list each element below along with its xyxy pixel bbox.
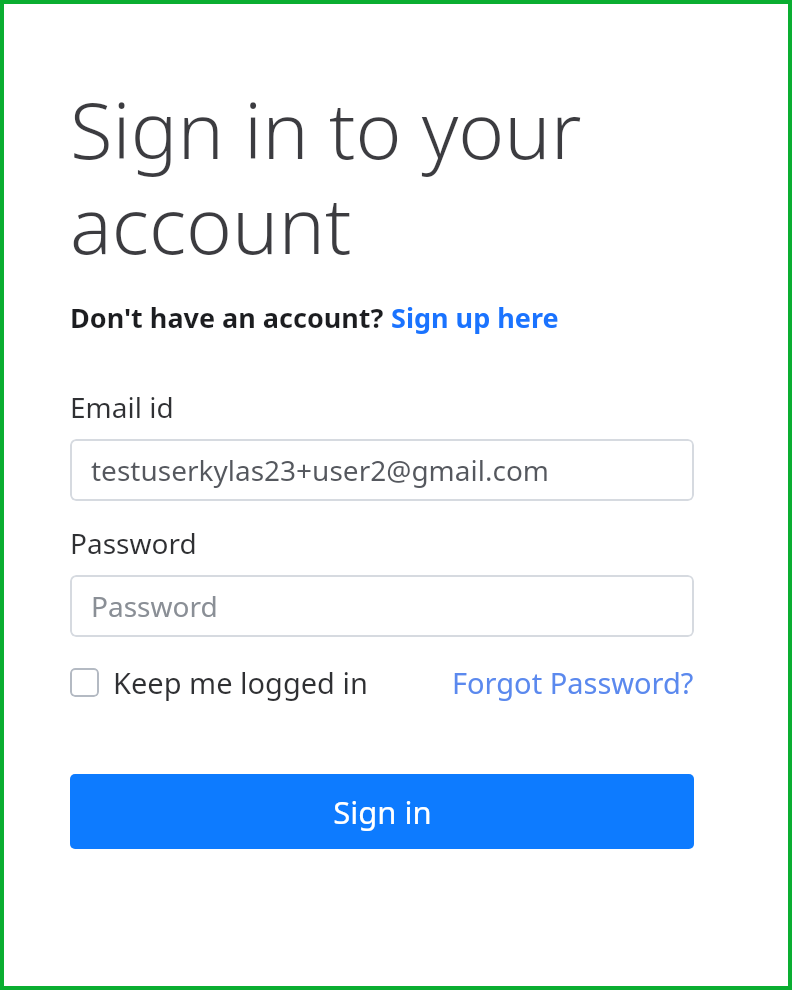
staticText: Email id [70, 388, 174, 426]
staticText: Password [91, 587, 218, 625]
staticText: Don't have an account? [70, 299, 391, 336]
button[interactable]: testuserkylas23+user2@gmail.com [70, 439, 694, 501]
staticText: testuserkylas23+user2@gmail.com [91, 451, 549, 489]
staticText: Password [70, 524, 197, 562]
button[interactable]: Forgot Password? [452, 663, 694, 702]
staticText: Sign in to your account [70, 76, 582, 277]
staticText: Forgot Password? [452, 663, 694, 702]
staticText: Keep me logged in [113, 663, 368, 702]
staticText: Sign in [333, 791, 432, 833]
button[interactable]: Sign up here [391, 299, 559, 336]
staticText: Sign up here [391, 299, 559, 336]
button[interactable]: Keep me logged in [70, 663, 368, 702]
button[interactable]: Password [70, 575, 694, 637]
button[interactable]: Sign in [70, 774, 694, 849]
